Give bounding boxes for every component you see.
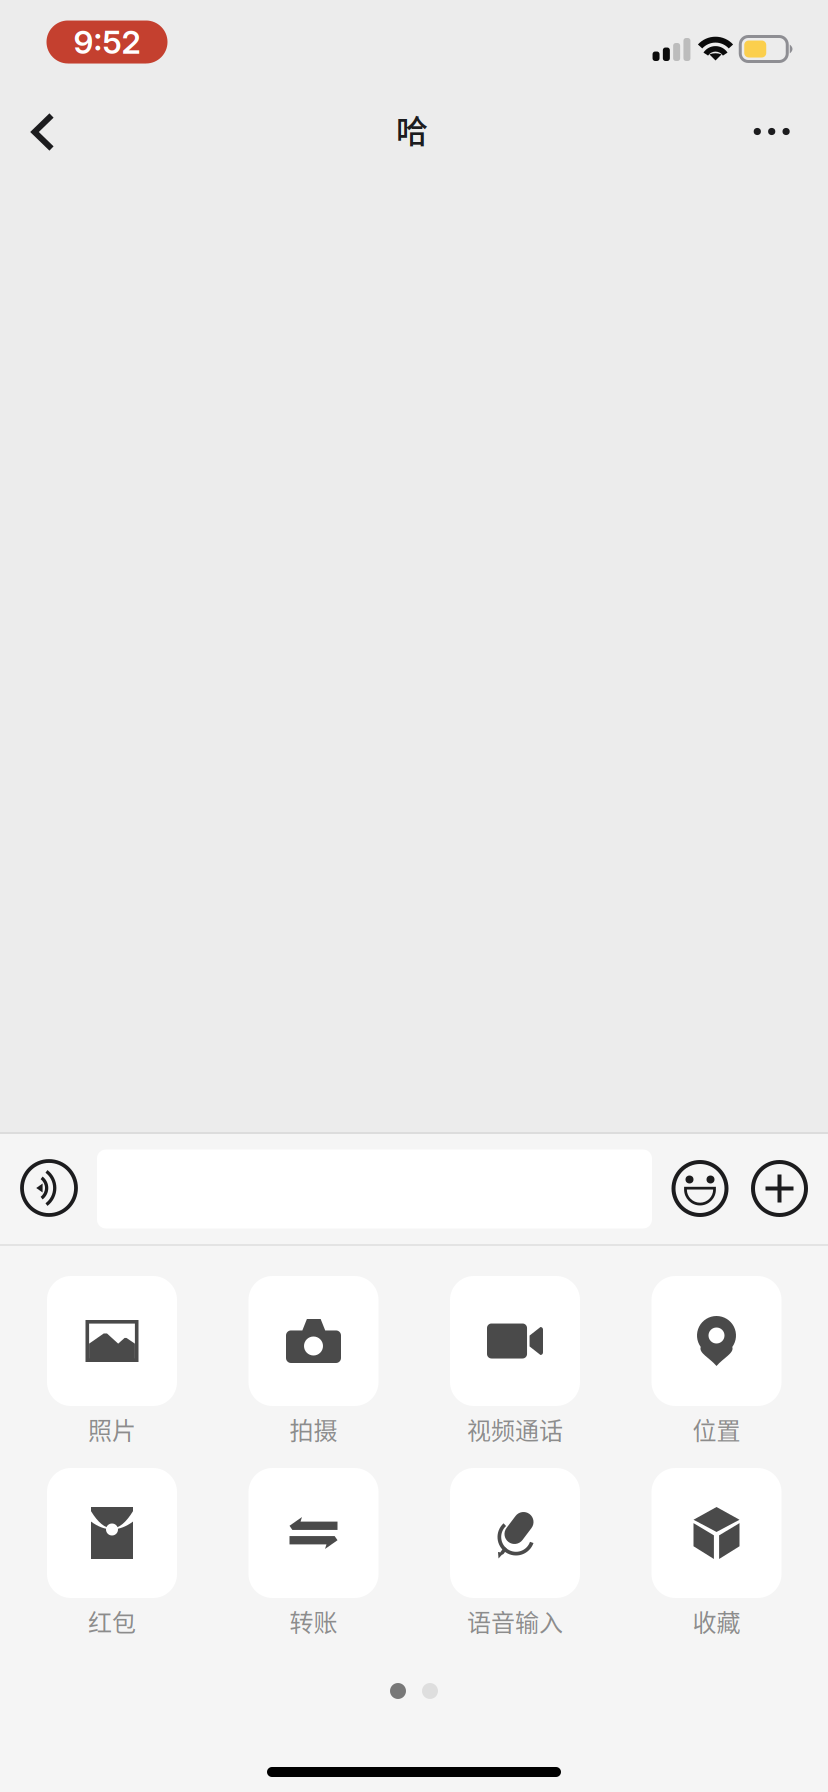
button[interactable]: 拍摄 bbox=[213, 1276, 413, 1452]
staticText: 照片 bbox=[88, 1412, 136, 1446]
staticText: 收藏 bbox=[692, 1604, 740, 1638]
button[interactable]: 转账 bbox=[213, 1468, 413, 1644]
staticText: 视频通话 bbox=[467, 1412, 563, 1446]
button[interactable]: 照片 bbox=[12, 1276, 212, 1452]
staticText: 拍摄 bbox=[289, 1412, 337, 1446]
button[interactable]: 位置 bbox=[616, 1276, 816, 1452]
button[interactable]: Emoji bbox=[661, 1150, 738, 1227]
staticText: 语音输入 bbox=[467, 1604, 563, 1638]
staticText: 哈 bbox=[396, 106, 428, 152]
button[interactable]: More functions bbox=[741, 1150, 818, 1227]
button[interactable]: 收藏 bbox=[616, 1468, 816, 1644]
button[interactable]: Voice message bbox=[10, 1149, 88, 1227]
staticText: 转账 bbox=[289, 1604, 337, 1638]
button[interactable]: 语音输入 bbox=[415, 1468, 615, 1644]
button[interactable]: 视频通话 bbox=[415, 1276, 615, 1452]
staticText: 9:52 bbox=[73, 23, 140, 61]
staticText: 位置 bbox=[692, 1412, 740, 1446]
staticText: 红包 bbox=[88, 1604, 136, 1638]
button[interactable]: 红包 bbox=[12, 1468, 212, 1644]
button[interactable]: Back bbox=[6, 91, 79, 172]
button[interactable]: More options bbox=[724, 96, 820, 167]
